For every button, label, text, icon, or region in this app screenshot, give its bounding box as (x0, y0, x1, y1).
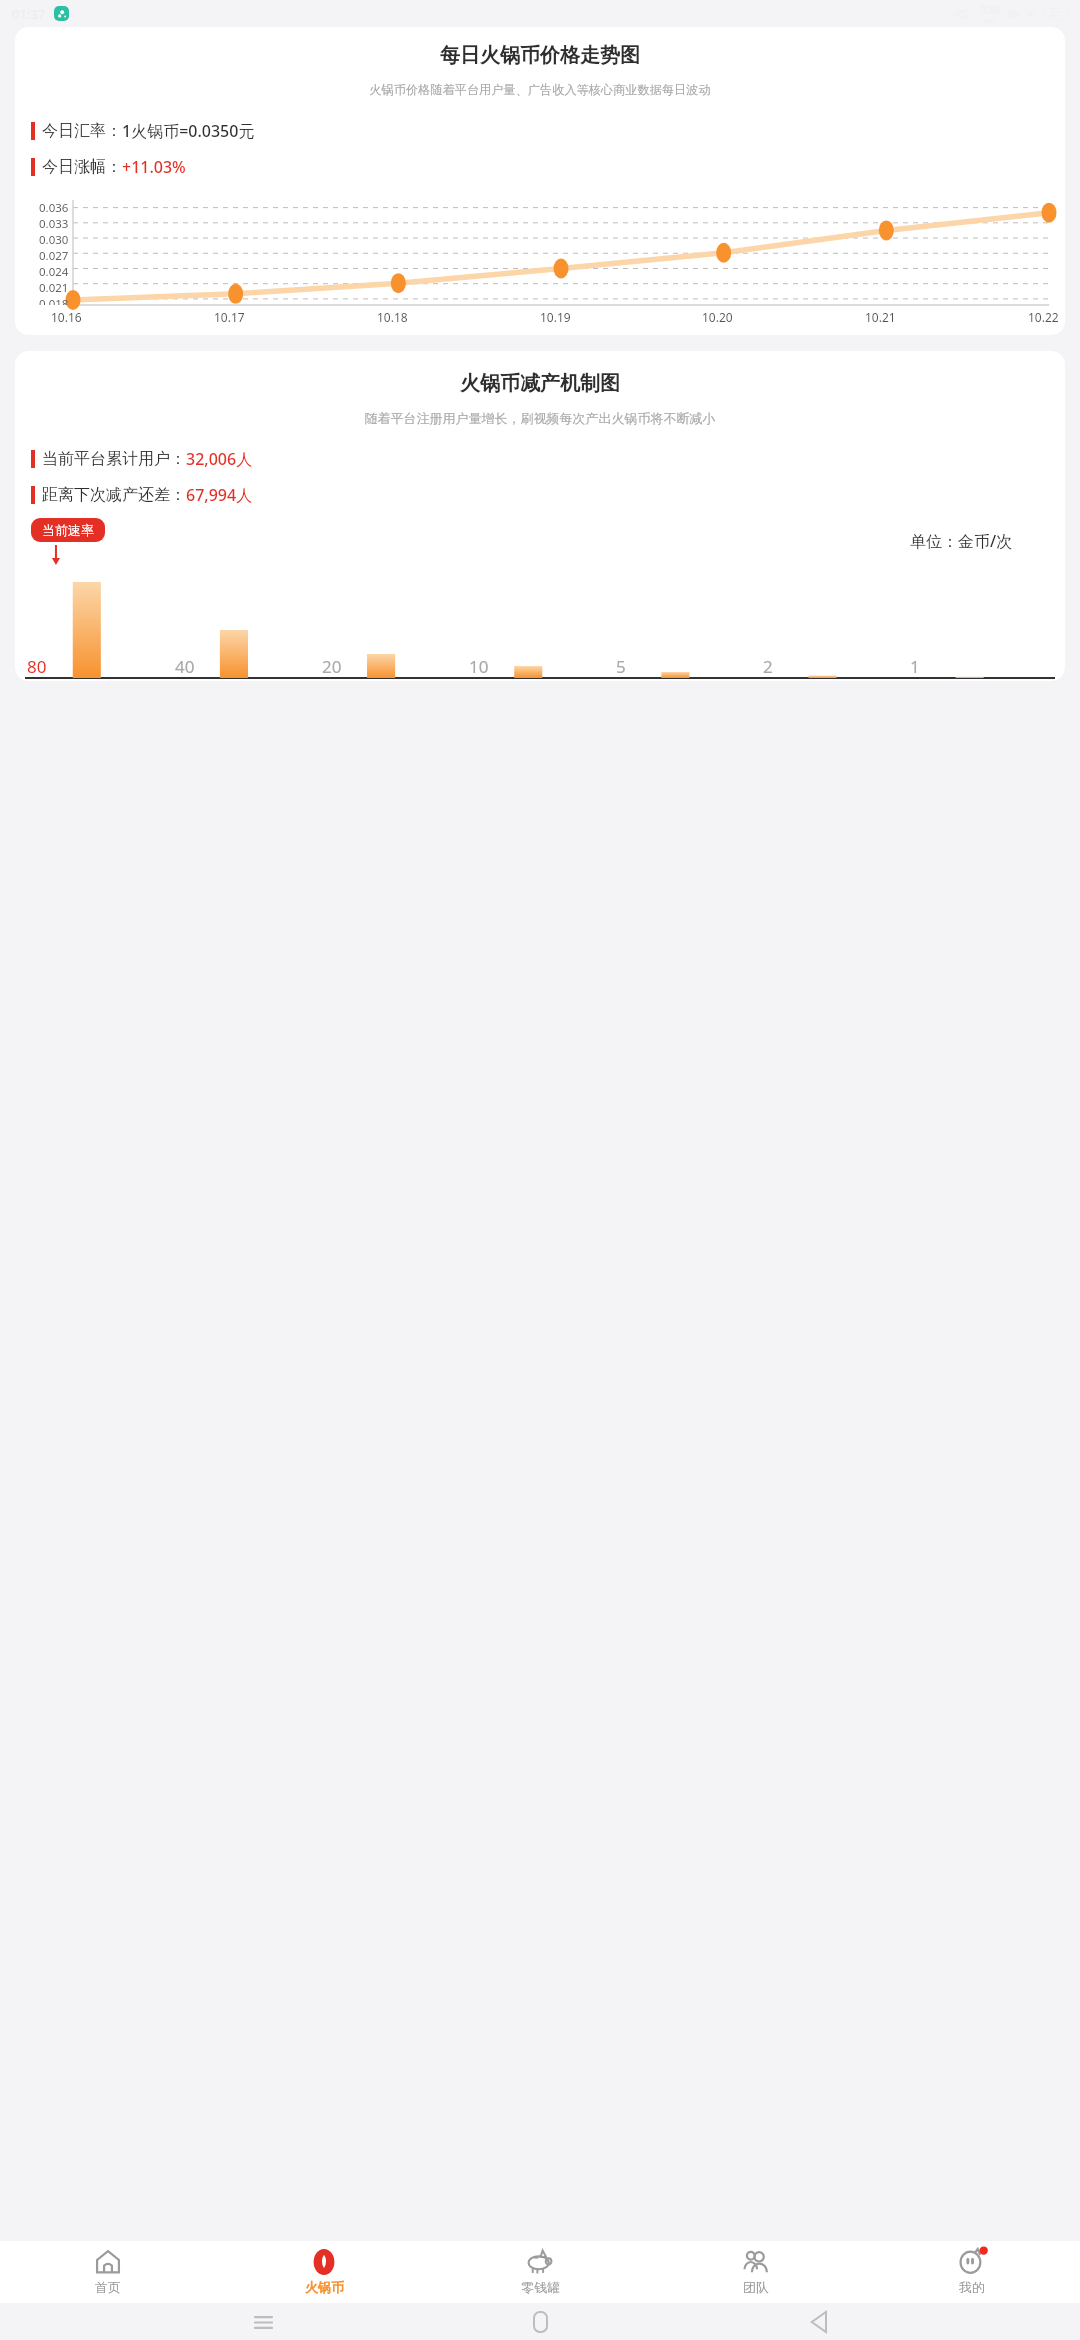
staticText: +11.03% (122, 156, 186, 178)
staticText: 40 (175, 655, 195, 678)
staticText: 10 (469, 655, 489, 678)
staticText: 火锅币 (305, 2279, 344, 2295)
button[interactable]: Home (525, 2307, 555, 2337)
staticText: 零钱罐 (521, 2279, 560, 2295)
staticText: 1 (910, 655, 920, 678)
button[interactable]: Recents (248, 2307, 278, 2337)
staticText: 5 (616, 655, 626, 678)
staticText: 当前速率 (42, 522, 94, 538)
staticText: 0.030 (39, 232, 69, 248)
staticText: 0.033 (39, 216, 69, 232)
staticText: 距离下次减产还差： (42, 485, 186, 505)
staticText: 67,994人 (186, 484, 253, 506)
button[interactable]: Back (803, 2307, 833, 2337)
staticText: 单位：金币/次 (910, 530, 1013, 552)
staticText: 0.027 (39, 248, 69, 264)
staticText: 2 (763, 655, 773, 678)
staticText: 火锅币价格随着平台用户量、广告收入等核心商业数据每日波动 (21, 82, 1059, 97)
staticText: 80 (27, 655, 47, 678)
staticText: 团队 (743, 2279, 769, 2295)
button[interactable]: 团队 (648, 2241, 864, 2303)
staticText: 当前平台累计用户： (42, 449, 186, 469)
button[interactable]: 零钱罐 (432, 2241, 648, 2303)
staticText: 今日汇率： (42, 121, 122, 141)
button[interactable]: 当前速率 (31, 518, 105, 542)
staticText: 0.021 (39, 280, 69, 296)
staticText: 我的 (959, 2279, 985, 2295)
staticText: 10.21 (865, 309, 896, 325)
button[interactable]: 火锅币 (216, 2241, 432, 2303)
staticText: 20 (322, 655, 342, 678)
staticText: 10.18 (377, 309, 408, 325)
staticText: 0.036 (39, 200, 69, 216)
staticText: 0.018 (39, 296, 69, 305)
staticText: 今日涨幅： (42, 157, 122, 177)
staticText: 火锅币减产机制图 (15, 371, 1065, 396)
staticText: 每日火锅币价格走势图 (15, 43, 1065, 68)
staticText: 首页 (95, 2279, 121, 2295)
staticText: 1火锅币=0.0350元 (122, 120, 255, 142)
button[interactable]: 首页 (0, 2241, 216, 2303)
staticText: 0.024 (39, 264, 69, 280)
staticText: 10.19 (540, 309, 571, 325)
staticText: 32,006人 (186, 448, 253, 470)
staticText: 10.22 (1028, 309, 1059, 325)
staticText: 10.16 (51, 309, 82, 325)
staticText: 10.17 (214, 309, 245, 325)
staticText: 随着平台注册用户量增长，刷视频每次产出火锅币将不断减小 (19, 410, 1061, 426)
button[interactable]: 我的 (864, 2241, 1080, 2303)
staticText: 10.20 (702, 309, 733, 325)
